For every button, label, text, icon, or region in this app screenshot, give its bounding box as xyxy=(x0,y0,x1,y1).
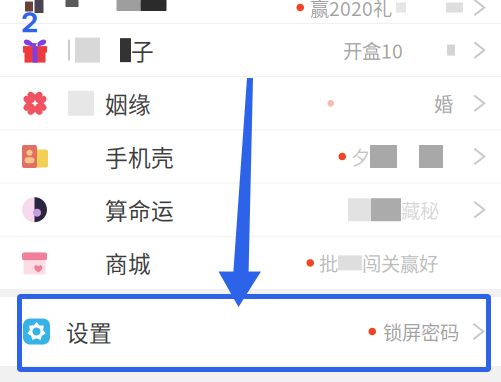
button[interactable]: 姻缘 xyxy=(0,77,501,130)
staticText: 夕 xyxy=(351,142,370,170)
button[interactable]: 设置 xyxy=(0,297,501,366)
button[interactable]: 子 xyxy=(0,24,501,77)
staticText: 算命运 xyxy=(105,193,174,226)
staticText: 婚 xyxy=(434,89,453,117)
button[interactable]: 算命运 xyxy=(0,184,501,237)
button[interactable]: 赢2020礼 xyxy=(0,0,501,23)
staticText: 手机壳 xyxy=(105,140,174,173)
staticText: 姻缘 xyxy=(105,87,151,120)
staticText: 设置 xyxy=(66,315,112,348)
staticText: 子 xyxy=(131,34,154,66)
staticText: 批 xyxy=(319,249,338,277)
staticText: 藏秘 xyxy=(401,196,439,224)
staticText: 锁屏密码 xyxy=(383,317,459,345)
staticText: 2 xyxy=(21,5,38,39)
staticText: 开盒10 xyxy=(343,36,403,64)
staticText: 赢2020礼 xyxy=(310,0,392,21)
button[interactable]: 商城 xyxy=(0,237,501,290)
button[interactable]: 手机壳 xyxy=(0,130,501,184)
staticText: 闯关赢好 xyxy=(362,249,438,277)
staticText: 商城 xyxy=(105,246,151,279)
